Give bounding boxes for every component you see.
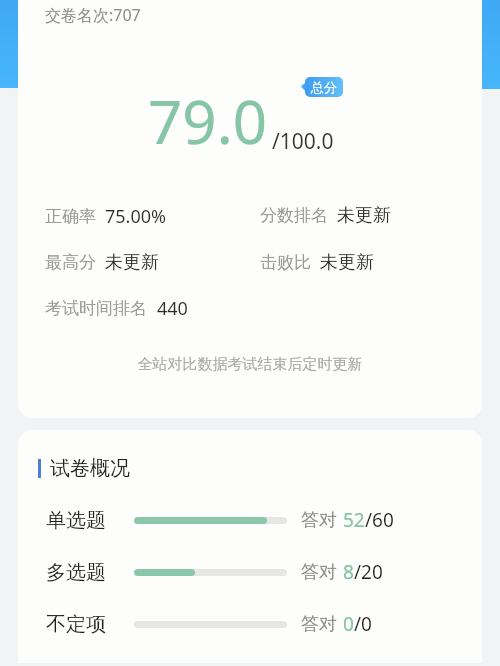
staticText: 最高分 [45, 252, 96, 273]
button[interactable]: 不定项 [18, 611, 482, 637]
staticText: /0 [354, 611, 372, 637]
staticText: 52 [343, 507, 365, 533]
staticText: 总分 [311, 79, 337, 95]
button[interactable]: 试卷概况 [38, 456, 130, 481]
staticText: 正确率 [45, 206, 96, 227]
staticText: 多选题 [46, 560, 106, 585]
staticText: 单选题 [46, 508, 106, 533]
staticText: /20 [354, 559, 383, 585]
staticText: 未更新 [105, 251, 159, 274]
staticText: /100.0 [272, 127, 334, 156]
staticText: 试卷概况 [50, 456, 130, 481]
button[interactable]: 多选题 [18, 559, 482, 585]
staticText: 未更新 [320, 251, 374, 274]
staticText: 75.00% [105, 204, 166, 229]
staticText: 答对 [301, 509, 337, 532]
button[interactable]: 单选题 [18, 507, 482, 533]
staticText: 不定项 [46, 612, 106, 637]
staticText: 79.0 [148, 80, 268, 162]
staticText: 答对 [301, 561, 337, 584]
staticText: 击败比 [260, 252, 311, 273]
staticText: 全站对比数据考试结束后定时更新 [18, 355, 482, 374]
staticText: 答对 [301, 613, 337, 636]
staticText: 交卷名次:707 [45, 4, 141, 26]
staticText: 440 [157, 296, 188, 321]
staticText: 0 [343, 611, 354, 637]
staticText: 考试时间排名 [45, 298, 147, 319]
staticText: 分数排名 [260, 205, 328, 226]
staticText: 未更新 [337, 204, 391, 227]
staticText: 8 [343, 559, 354, 585]
staticText: /60 [365, 507, 394, 533]
